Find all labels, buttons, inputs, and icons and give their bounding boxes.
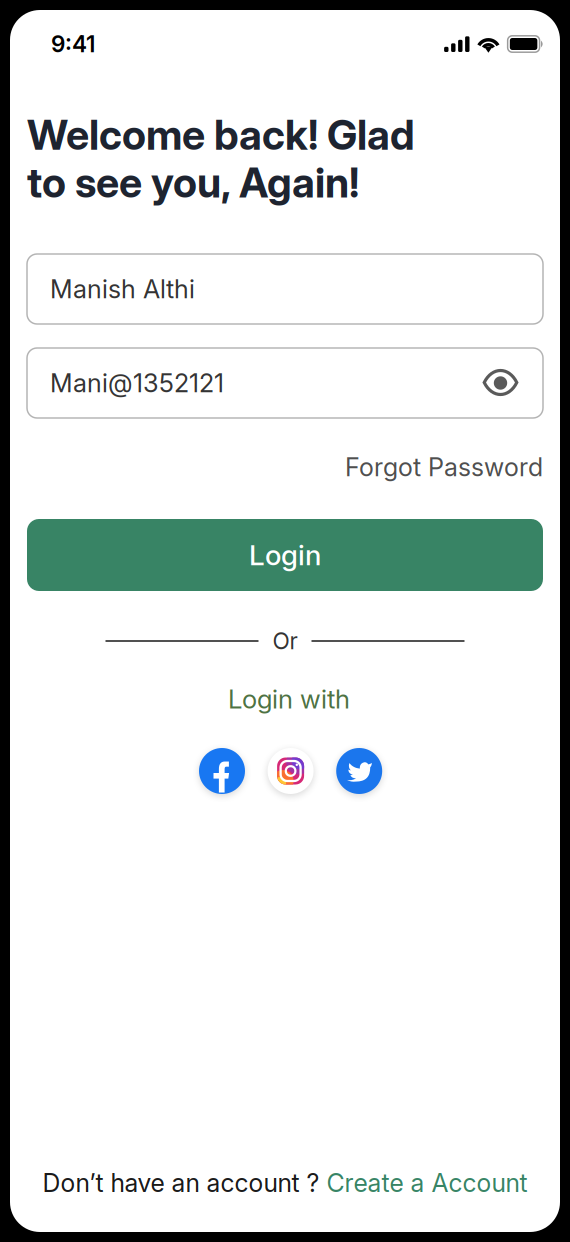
button[interactable]: Login bbox=[27, 519, 543, 591]
staticText: Mani@1352121 bbox=[50, 368, 224, 398]
staticText: 9:41 bbox=[51, 30, 95, 58]
button[interactable]: Show password bbox=[482, 368, 519, 398]
button[interactable]: Create a Account bbox=[326, 1168, 527, 1198]
button[interactable]: Continue with Twitter bbox=[336, 748, 382, 794]
button[interactable]: Continue with Instagram bbox=[268, 748, 314, 794]
staticText: Manish Althi bbox=[50, 274, 195, 304]
staticText: Forgot Password bbox=[345, 452, 543, 482]
button[interactable]: Continue with Facebook bbox=[199, 748, 245, 794]
staticText: Don’t have an account ? bbox=[42, 1168, 326, 1198]
staticText: Login bbox=[249, 538, 321, 572]
staticText: Login with bbox=[228, 683, 350, 715]
staticText: Create a Account bbox=[326, 1168, 527, 1198]
staticText: Or bbox=[272, 627, 297, 655]
button[interactable]: Forgot Password bbox=[27, 452, 543, 482]
staticText: Welcome back! Glad to see you, Again! bbox=[27, 110, 415, 207]
